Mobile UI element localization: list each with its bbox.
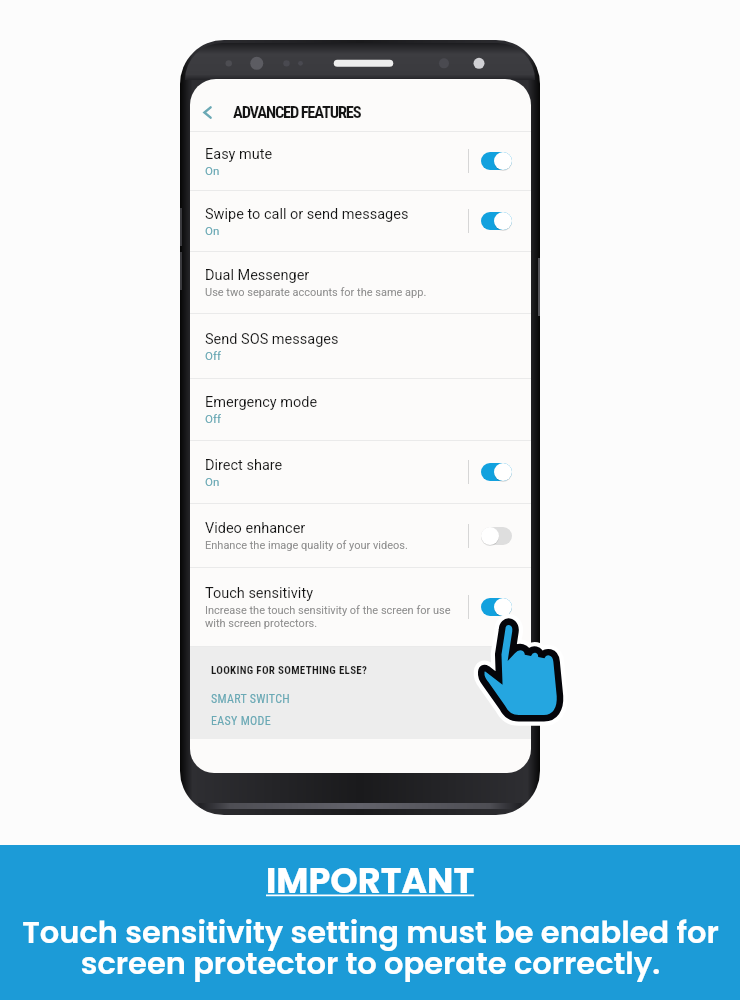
button[interactable]: SMART SWITCH bbox=[211, 692, 291, 706]
staticText: ADVANCED FEATURES bbox=[233, 103, 361, 122]
staticText: Touch sensitivity setting must be enable… bbox=[22, 911, 719, 984]
button[interactable]: Swipe to call or send messages bbox=[190, 191, 531, 252]
button[interactable]: EASY MODE bbox=[211, 714, 271, 728]
button[interactable]: Emergency mode bbox=[190, 379, 531, 441]
staticText: Use two separate accounts for the same a… bbox=[205, 286, 427, 299]
button[interactable]: LOOKING FOR SOMETHING ELSE? bbox=[211, 664, 368, 677]
button[interactable]: Touch sensitivity bbox=[190, 568, 531, 647]
staticText: On bbox=[205, 224, 220, 237]
button[interactable]: Switch on bbox=[481, 463, 512, 481]
staticText: On bbox=[205, 164, 220, 177]
staticText: Touch sensitivity bbox=[205, 585, 313, 602]
staticText: Send SOS messages bbox=[205, 331, 339, 348]
button[interactable]: Dual Messenger bbox=[190, 252, 531, 314]
other: Tap here bbox=[481, 616, 565, 722]
button[interactable]: Send SOS messages bbox=[190, 314, 531, 379]
button[interactable]: Switch on bbox=[481, 212, 512, 230]
staticText: Enhance the image quality of your videos… bbox=[205, 539, 408, 552]
staticText: Emergency mode bbox=[205, 394, 318, 411]
button[interactable]: Video enhancer bbox=[190, 504, 531, 568]
button[interactable]: Direct share bbox=[190, 441, 531, 504]
staticText: Swipe to call or send messages bbox=[205, 206, 409, 223]
staticText: IMPORTANT bbox=[266, 856, 475, 905]
staticText: Off bbox=[205, 349, 221, 362]
staticText: Dual Messenger bbox=[205, 267, 310, 284]
button[interactable]: Back bbox=[193, 99, 221, 125]
button[interactable]: Switch on bbox=[481, 598, 512, 616]
staticText: Direct share bbox=[205, 457, 283, 474]
staticText: Off bbox=[205, 412, 221, 425]
staticText: On bbox=[205, 475, 220, 488]
button[interactable]: Switch on bbox=[481, 152, 512, 170]
staticText: Increase the touch sensitivity of the sc… bbox=[205, 604, 451, 630]
staticText: Easy mute bbox=[205, 146, 273, 163]
button[interactable]: Easy mute bbox=[190, 132, 531, 191]
staticText: Video enhancer bbox=[205, 520, 306, 537]
button[interactable]: Switch off bbox=[481, 527, 512, 545]
